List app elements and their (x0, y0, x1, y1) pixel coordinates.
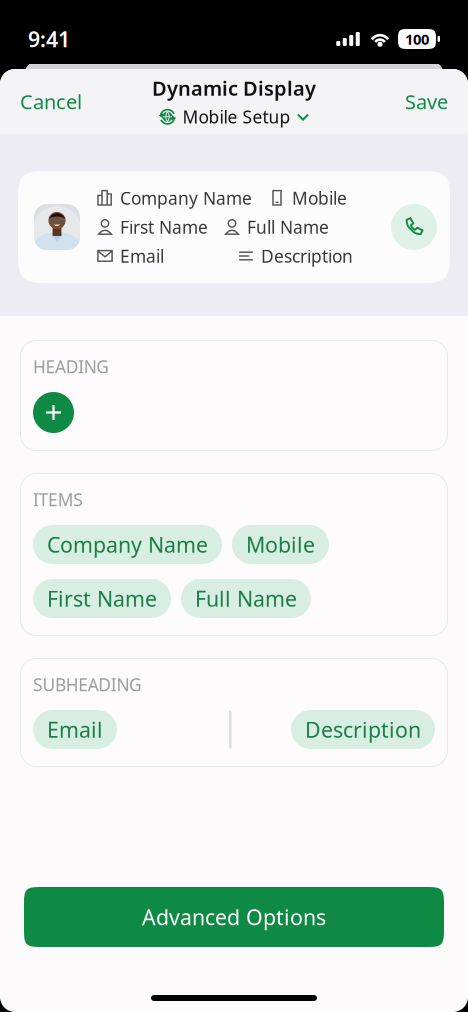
staticText: Email (120, 244, 164, 267)
button[interactable]: First Name (33, 579, 171, 618)
staticText: Advanced Options (142, 903, 326, 931)
button[interactable]: Save (405, 82, 448, 121)
button[interactable]: Mobile Setup (158, 105, 309, 128)
staticText: Dynamic Display (152, 75, 316, 101)
button[interactable]: Description (291, 710, 435, 749)
staticText: Cancel (20, 88, 82, 115)
button[interactable]: Add heading field (33, 392, 74, 433)
button[interactable]: Mobile (232, 525, 329, 564)
staticText: Company Name (47, 530, 208, 559)
staticText: HEADING (33, 355, 109, 378)
staticText: First Name (47, 584, 157, 613)
staticText: Description (305, 715, 421, 744)
staticText: Full Name (195, 584, 297, 613)
staticText: ITEMS (33, 488, 83, 511)
button[interactable]: Cancel (20, 82, 82, 121)
button[interactable]: Advanced Options (24, 887, 444, 947)
staticText: Mobile (246, 530, 315, 559)
staticText: Email (47, 715, 103, 744)
button[interactable]: Email (33, 710, 117, 749)
staticText: 9:41 (28, 25, 70, 53)
button[interactable]: Company Name (33, 525, 222, 564)
button[interactable]: Full Name (181, 579, 311, 618)
staticText: Mobile (292, 186, 347, 209)
staticText: SUBHEADING (33, 673, 142, 696)
staticText: 100 (405, 29, 429, 49)
button[interactable]: Call (391, 204, 437, 250)
staticText: Full Name (247, 215, 329, 238)
staticText: Save (405, 88, 448, 115)
staticText: Description (261, 244, 353, 267)
staticText: Mobile Setup (182, 105, 290, 128)
staticText: Company Name (120, 186, 252, 209)
staticText: First Name (120, 215, 208, 238)
